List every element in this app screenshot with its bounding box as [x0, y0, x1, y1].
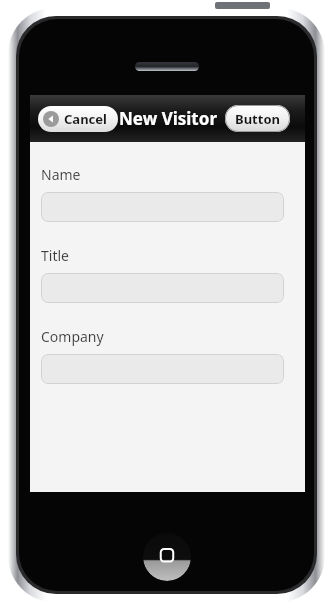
- staticText: Button: [235, 110, 280, 128]
- other: Back: [43, 111, 59, 127]
- button[interactable]: [41, 192, 284, 222]
- button[interactable]: Button: [225, 105, 290, 132]
- button[interactable]: [41, 273, 284, 303]
- staticText: Company: [41, 327, 104, 346]
- staticText: Name: [41, 165, 81, 184]
- button[interactable]: Back: [38, 106, 118, 132]
- staticText: New Visitor: [119, 107, 217, 130]
- staticText: Cancel: [64, 110, 107, 128]
- button[interactable]: Home: [143, 533, 191, 581]
- button[interactable]: [41, 354, 284, 384]
- staticText: Title: [41, 246, 69, 265]
